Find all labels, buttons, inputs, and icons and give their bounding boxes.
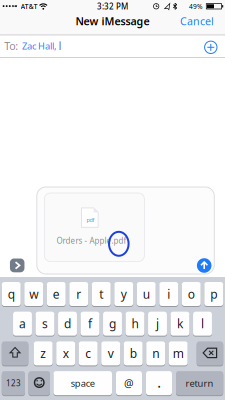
staticText: o (188, 286, 195, 302)
button[interactable]: . (146, 371, 172, 396)
staticText: y (121, 286, 127, 302)
staticText: v (108, 345, 114, 361)
button[interactable]: @ (116, 371, 142, 396)
button[interactable]: Cancel (180, 14, 214, 28)
staticText: k (177, 316, 183, 332)
staticText: i (167, 286, 170, 302)
button[interactable]: a (13, 311, 32, 336)
staticText: g (109, 316, 116, 332)
staticText: m (173, 345, 184, 361)
staticText: u (143, 286, 150, 302)
button[interactable]: h (125, 311, 144, 336)
staticText: b (130, 345, 137, 361)
staticText: . (157, 375, 160, 391)
staticText: To: (4, 39, 18, 53)
staticText: pdf (86, 216, 94, 223)
button[interactable]: s (35, 311, 54, 336)
button[interactable]: c (79, 341, 98, 366)
button[interactable]: f (80, 311, 99, 336)
button[interactable] (197, 258, 211, 273)
button[interactable]: t (92, 281, 111, 306)
staticText: return (186, 377, 214, 389)
staticText: t (99, 286, 103, 302)
button[interactable]: k (171, 311, 189, 336)
staticText: q (8, 286, 15, 302)
staticText: 123 (6, 378, 21, 388)
staticText: e (53, 286, 60, 302)
button[interactable]: return (176, 371, 223, 396)
staticText: h (131, 316, 138, 332)
staticText: j (156, 316, 159, 332)
staticText: @ (124, 376, 134, 390)
staticText: n (152, 345, 159, 361)
button[interactable]: v (101, 341, 120, 366)
staticText: New iMessage (75, 14, 149, 28)
button[interactable] (197, 341, 223, 366)
staticText: space (71, 377, 95, 389)
button[interactable]: z (34, 341, 53, 366)
button[interactable] (28, 371, 50, 396)
button[interactable]: x (56, 341, 75, 366)
staticText: l (201, 316, 204, 332)
staticText: Zac Hall, (22, 40, 57, 52)
staticText: f (88, 316, 92, 332)
button[interactable]: i (159, 281, 178, 306)
staticText: z (40, 345, 46, 361)
button[interactable]: u (137, 281, 156, 306)
button[interactable]: b (124, 341, 143, 366)
staticText: 49% (189, 2, 203, 11)
staticText: s (42, 316, 48, 332)
button[interactable]: 123 (2, 371, 25, 396)
button[interactable]: y (114, 281, 133, 306)
button[interactable]: n (146, 341, 165, 366)
button[interactable]: q (2, 281, 21, 306)
staticText: Cancel (180, 14, 214, 28)
staticText: r (76, 286, 81, 302)
button[interactable] (203, 40, 218, 55)
staticText: 3:32 PM (97, 1, 128, 12)
button[interactable]: e (47, 281, 66, 306)
staticText: a (19, 316, 26, 332)
button[interactable] (2, 341, 28, 366)
button[interactable]: pdf (44, 193, 144, 261)
button[interactable]: p (204, 281, 223, 306)
button[interactable]: space (53, 371, 112, 396)
button[interactable]: g (103, 311, 122, 336)
staticText: x (63, 345, 69, 361)
staticText: w (29, 286, 38, 302)
staticText: c (85, 345, 91, 361)
staticText: Orders - Apple.pdf (56, 235, 126, 246)
staticText: AT&T (21, 2, 38, 11)
button[interactable]: m (169, 341, 188, 366)
button[interactable]: d (58, 311, 77, 336)
button[interactable]: r (69, 281, 88, 306)
button[interactable] (10, 258, 24, 272)
button[interactable]: l (193, 311, 212, 336)
button[interactable]: w (24, 281, 43, 306)
button[interactable]: j (148, 311, 167, 336)
staticText: p (210, 286, 217, 302)
staticText: d (64, 316, 71, 332)
button[interactable]: o (182, 281, 201, 306)
